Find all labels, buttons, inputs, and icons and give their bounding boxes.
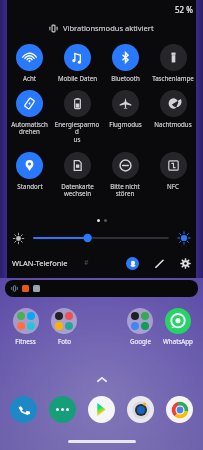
button[interactable]: Edit [154,258,165,269]
button[interactable]: Foto [45,308,83,345]
button[interactable]: Flugmodus [101,89,149,129]
staticText: Standort [17,182,43,190]
other: Low brightness [13,233,24,244]
button[interactable]: Acht [6,43,53,83]
button[interactable]: Camera [127,396,154,423]
button[interactable] [5,280,198,297]
staticText: Foto [58,337,71,345]
button[interactable]: Settings [180,258,191,269]
staticText: Nachtmodus [154,120,192,128]
staticText: Datenkarte wechseln [61,182,94,198]
button[interactable]: Energiesparmod us [53,89,101,145]
button[interactable]: Bitte nicht stören [101,151,149,199]
button[interactable]: Taschenlampe [149,43,197,83]
button[interactable]: User [126,257,139,270]
staticText: WLAN-Telefonie [12,258,68,268]
staticText: Energiesparmod us [53,120,101,144]
button[interactable]: Low brightness [13,229,190,247]
staticText: # [84,258,89,268]
button[interactable]: NFC [149,151,197,191]
other: Auto brightness [178,232,190,244]
staticText: NFC [167,182,179,190]
button[interactable]: Mobile Daten [53,43,101,83]
staticText: Bitte nicht stören [101,182,149,198]
button[interactable]: Datenkarte wechseln [53,151,101,199]
button[interactable]: Phone [10,396,37,423]
staticText: Google [130,337,151,345]
button[interactable]: Standort [6,151,53,191]
button[interactable]: Messages [49,396,76,423]
staticText: Automatisch drehen [11,120,48,136]
button[interactable]: Play Store [88,396,115,423]
button[interactable]: WLAN-Telefonie [12,258,68,268]
staticText: Acht [23,74,36,82]
button[interactable]: Fitness [6,308,45,345]
staticText: 52 % [175,4,193,15]
button[interactable]: Google [121,308,159,345]
button[interactable]: Bluetooth [101,43,149,83]
button[interactable]: Nachtmodus [149,89,197,129]
staticText: Flugmodus [109,120,142,128]
staticText: Bluetooth [111,74,140,82]
staticText: WhatsApp [163,337,193,345]
button[interactable]: Chrome [166,396,193,423]
staticText: Mobile Daten [58,74,97,82]
staticText: Taschenlampe [152,74,194,82]
staticText: Vibrationsmodus aktiviert [63,23,154,33]
staticText: Fitness [15,337,36,345]
button[interactable]: Open app drawer [96,376,108,383]
button[interactable]: WhatsApp [159,308,197,345]
button[interactable]: Automatisch drehen [6,89,53,137]
